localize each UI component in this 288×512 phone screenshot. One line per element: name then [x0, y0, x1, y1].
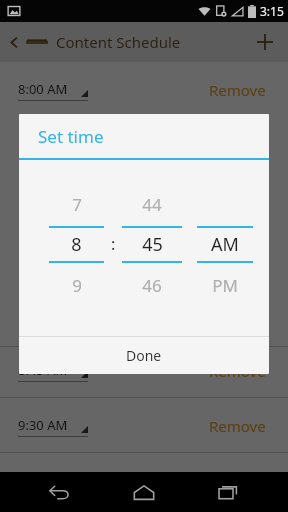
staticText: Content Schedule [56, 32, 181, 52]
button[interactable]: Remove [205, 357, 270, 385]
staticText: Set time [38, 125, 104, 148]
button[interactable]: Home [120, 472, 168, 512]
staticText: 8 [71, 232, 82, 257]
staticText: 9 [72, 274, 82, 297]
button[interactable]: Remove [205, 76, 270, 104]
staticText: 8:45 AM [18, 361, 68, 379]
staticText: 7 [72, 193, 82, 216]
staticText: PM [212, 274, 238, 297]
staticText: : [111, 233, 116, 255]
staticText: 44 [142, 193, 162, 216]
staticText: Remove [209, 416, 266, 436]
button[interactable]: 8:45 AM [18, 361, 88, 382]
button[interactable]: Recent apps [204, 472, 252, 512]
staticText: Remove [209, 80, 266, 100]
staticText: AM [211, 232, 239, 257]
staticText: Done [126, 346, 162, 365]
button[interactable]: Back [4, 32, 24, 52]
staticText: 45 [142, 232, 163, 257]
staticText: 9:30 AM [18, 416, 68, 434]
button[interactable]: Back [36, 472, 84, 512]
staticText: 46 [142, 274, 162, 297]
button[interactable]: Add [250, 27, 280, 57]
staticText: 3:15 [260, 3, 284, 19]
button[interactable]: 9:30 AM [18, 416, 88, 437]
button[interactable]: Remove [205, 412, 270, 440]
staticText: 8:00 AM [18, 80, 68, 98]
staticText: Remove [209, 361, 266, 381]
button[interactable]: 8:00 AM [18, 80, 88, 101]
button[interactable]: Done [19, 337, 269, 374]
